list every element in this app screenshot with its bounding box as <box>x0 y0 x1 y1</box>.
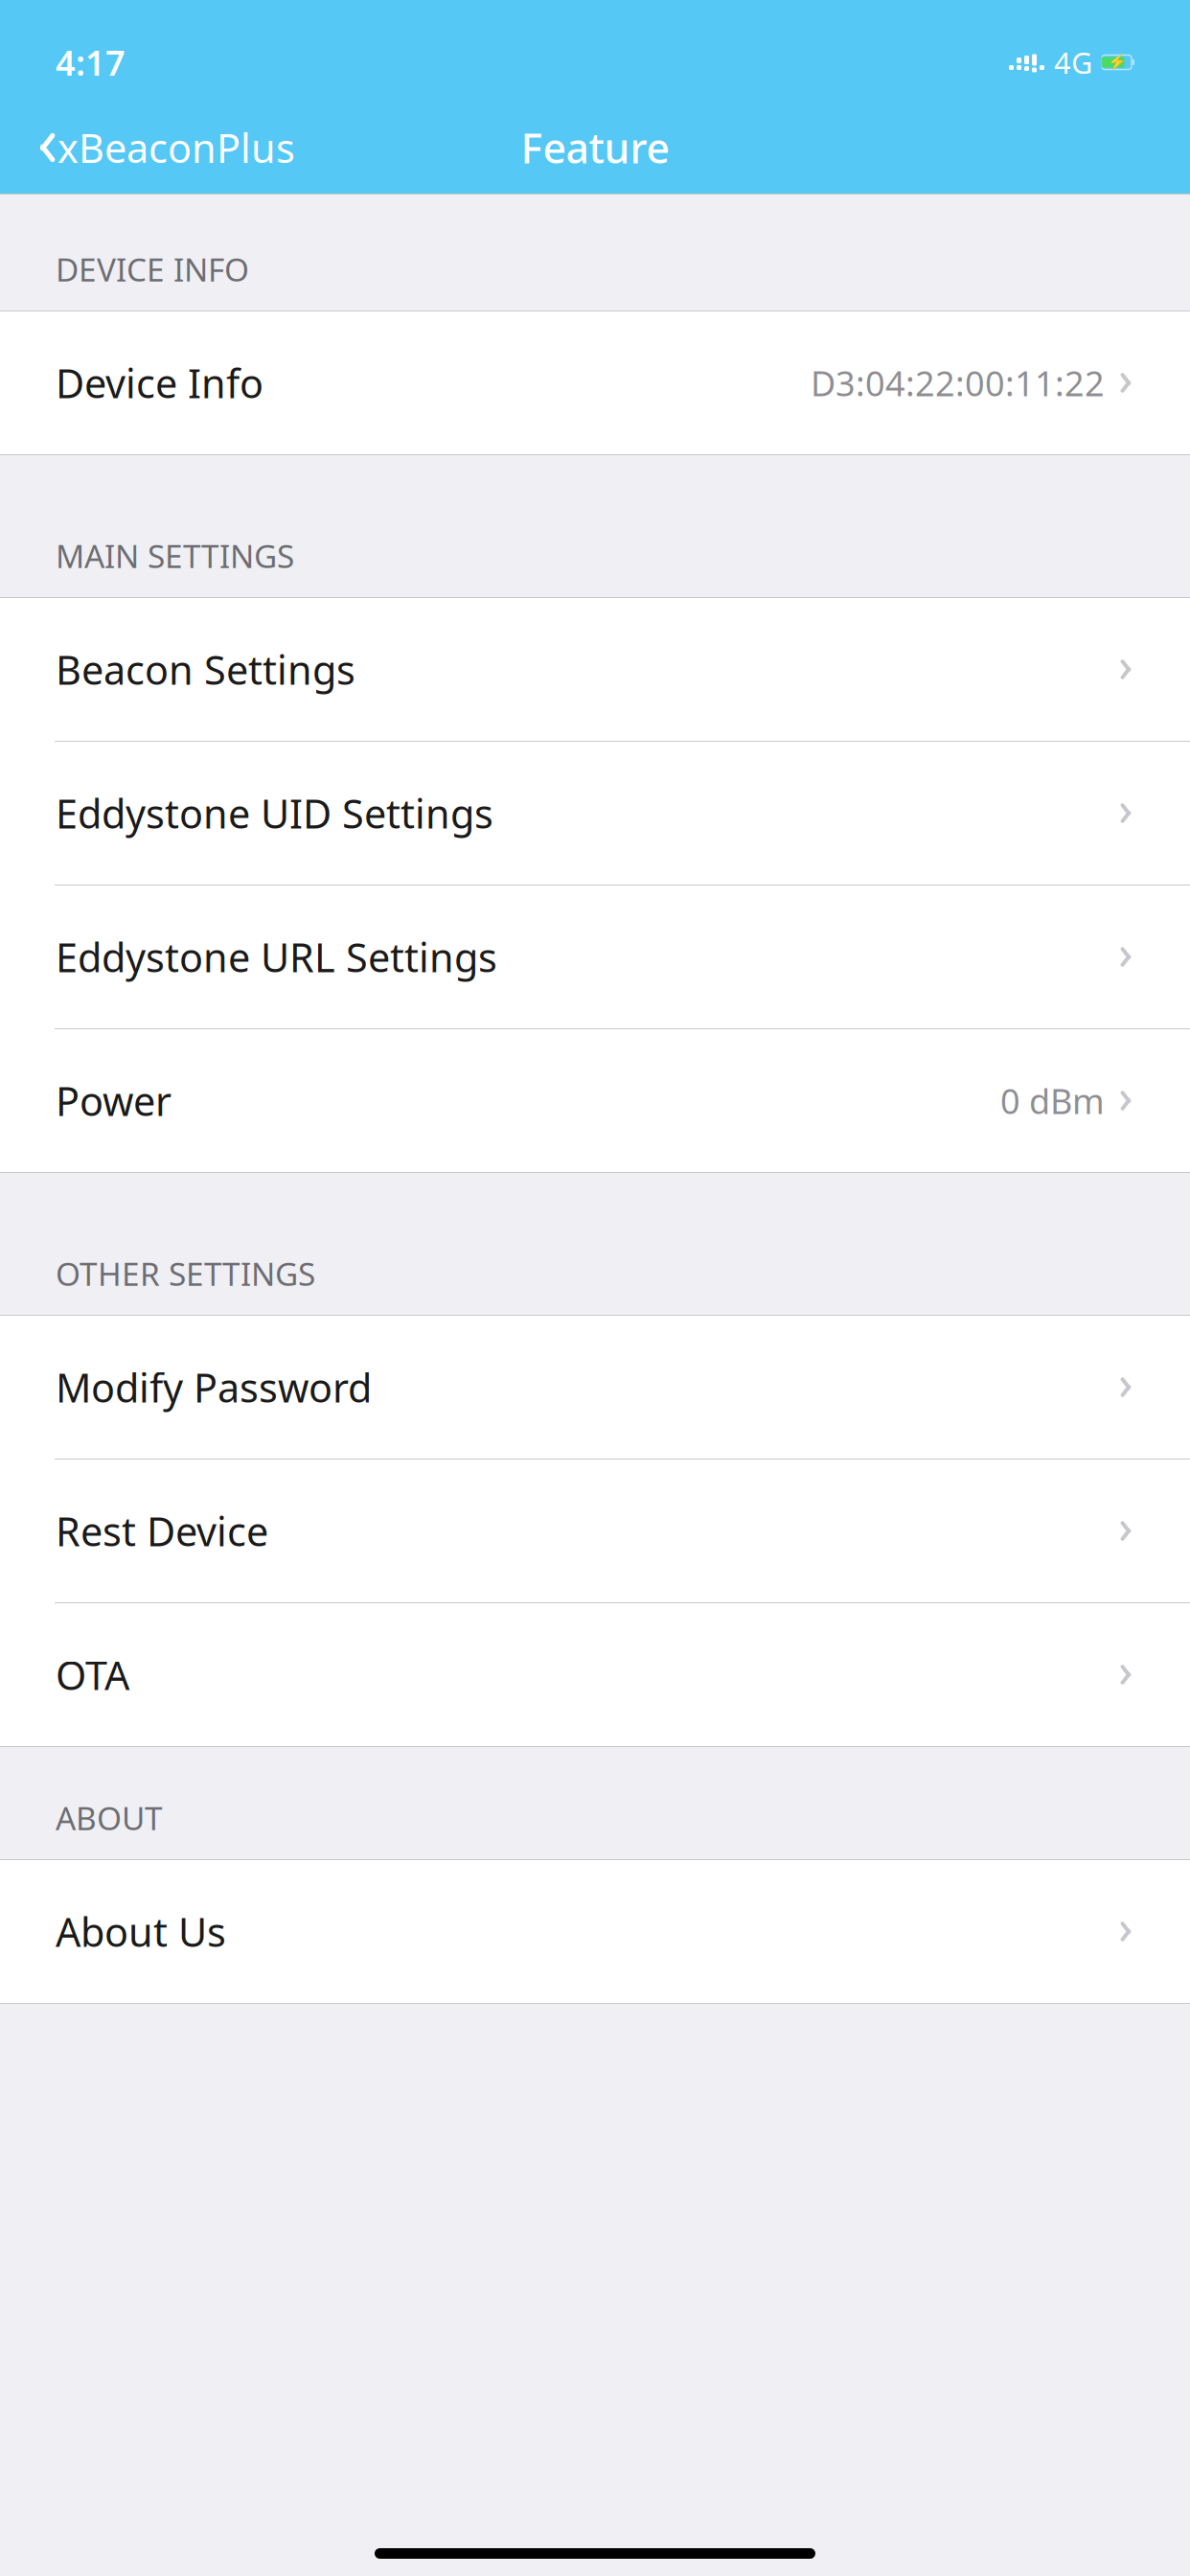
staticText: Power <box>56 1074 172 1127</box>
staticText: 0 dBm <box>1000 1078 1105 1124</box>
button[interactable]: xBeaconPlus <box>29 112 301 184</box>
staticText: 4:17 <box>56 39 126 85</box>
button[interactable]: Power <box>0 1028 1190 1172</box>
staticText: About Us <box>56 1905 226 1958</box>
button[interactable]: Eddystone URL Settings <box>0 885 1190 1028</box>
staticText: xBeaconPlus <box>57 121 295 174</box>
staticText: Eddystone UID Settings <box>56 787 493 839</box>
button[interactable]: OTA <box>0 1602 1190 1746</box>
staticText: Modify Password <box>56 1361 372 1414</box>
staticText: MAIN SETTINGS <box>56 534 294 577</box>
button[interactable]: Modify Password <box>0 1316 1190 1459</box>
button[interactable]: Rest Device <box>0 1459 1190 1602</box>
staticText: OTA <box>56 1648 129 1701</box>
staticText: DEVICE INFO <box>56 248 249 290</box>
staticText: D3:04:22:00:11:22 <box>811 360 1105 406</box>
staticText: Beacon Settings <box>56 643 355 696</box>
staticText: Feature <box>521 120 669 175</box>
staticText: ABOUT <box>56 1797 163 1839</box>
button[interactable]: About Us <box>0 1860 1190 2003</box>
staticText: Eddystone URL Settings <box>56 931 497 983</box>
button[interactable]: Device Info <box>0 311 1190 454</box>
staticText: OTHER SETTINGS <box>56 1252 315 1295</box>
button[interactable]: Beacon Settings <box>0 598 1190 741</box>
staticText: 4G <box>1054 43 1092 82</box>
staticText: ⚡ <box>1107 54 1126 71</box>
button[interactable]: Eddystone UID Settings <box>0 741 1190 885</box>
staticText: Rest Device <box>56 1505 268 1557</box>
staticText: Device Info <box>56 357 263 409</box>
